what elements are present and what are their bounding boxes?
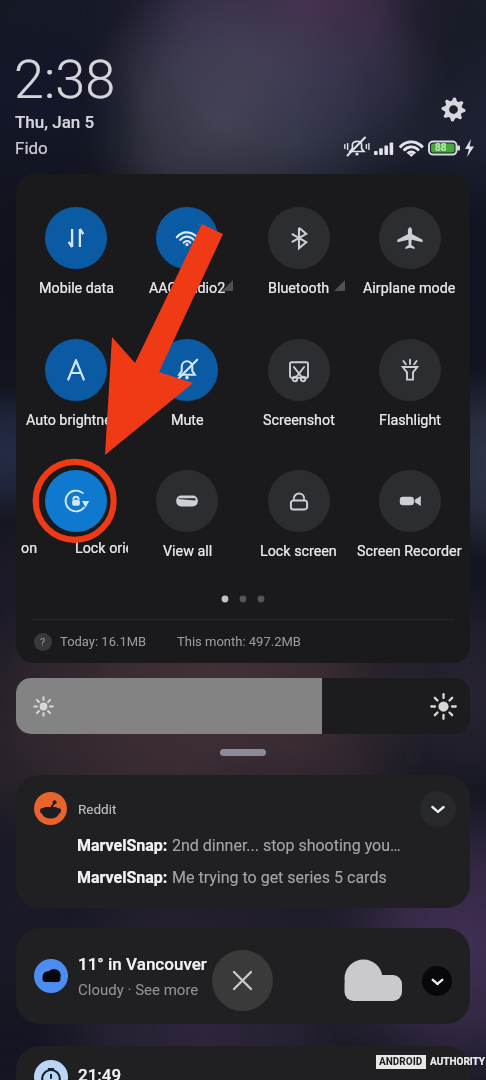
button[interactable]: Reddit (16, 775, 470, 908)
staticText: Mobile data (39, 280, 115, 297)
button[interactable] (255, 465, 343, 557)
button[interactable] (143, 334, 231, 426)
button[interactable]: Brightness (16, 678, 470, 734)
staticText: View all (163, 543, 213, 560)
staticText: Me trying to get series 5 cards (172, 868, 387, 887)
button[interactable] (143, 465, 231, 557)
staticText: Today: 16.1MB (60, 634, 147, 649)
button[interactable]: 11° in Vancouver (16, 928, 470, 1024)
staticText: Airplane mode (363, 280, 456, 297)
staticText: Thu, Jan 5 (15, 112, 95, 132)
button[interactable] (32, 465, 120, 557)
staticText: Screen Recorder (357, 543, 462, 560)
button[interactable]: Expand weather (422, 966, 452, 996)
staticText: Cloudy · See more (78, 981, 199, 999)
button[interactable] (366, 465, 454, 557)
staticText: AUTHORITY (430, 1056, 486, 1068)
button[interactable] (143, 202, 231, 294)
staticText: 21:49 (78, 1065, 122, 1080)
staticText: ? (40, 636, 46, 649)
staticText: This month: 497.2MB (177, 634, 301, 649)
staticText: MarvelSnap: (77, 836, 172, 855)
staticText: Mute (171, 412, 204, 429)
staticText: Lock orientation (75, 540, 128, 557)
staticText: AAC Audio2 (149, 280, 226, 297)
button[interactable] (255, 334, 343, 426)
button[interactable] (366, 334, 454, 426)
staticText: Auto brightness (26, 412, 127, 429)
staticText: Lock screen (260, 543, 337, 560)
staticText: Bluetooth (268, 280, 330, 297)
staticText: 2nd dinner... stop shooting you… (172, 836, 401, 855)
staticText: MarvelSnap: (77, 868, 172, 887)
button[interactable]: 21:49 (16, 1046, 470, 1080)
button[interactable]: Close (212, 950, 273, 1011)
button[interactable] (32, 202, 120, 294)
staticText: Reddit (78, 801, 117, 817)
staticText: 2:38 (14, 48, 116, 111)
button[interactable] (366, 202, 454, 294)
staticText: ANDROID (379, 1056, 423, 1068)
staticText: 88 (435, 142, 447, 154)
staticText: Fido (15, 138, 48, 158)
button[interactable]: Settings (437, 93, 470, 126)
staticText: on (21, 540, 38, 557)
staticText: Screenshot (263, 412, 335, 429)
button[interactable]: Expand notification (420, 791, 456, 827)
staticText: 11° in Vancouver (78, 954, 207, 974)
staticText: Flashlight (379, 412, 441, 429)
button[interactable] (255, 202, 343, 294)
button[interactable] (32, 334, 120, 426)
